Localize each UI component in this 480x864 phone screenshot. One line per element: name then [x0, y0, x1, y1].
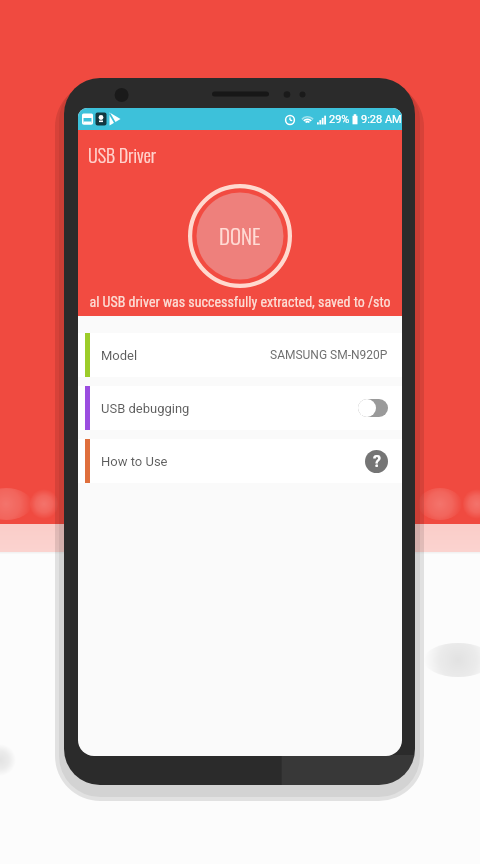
staticText: Model: [101, 348, 138, 363]
button[interactable]: Model: [78, 333, 402, 377]
staticText: USB Driver: [88, 142, 157, 169]
button[interactable]: DONE: [187, 183, 293, 289]
staticText: ?: [373, 452, 381, 471]
button[interactable]: USB debugging: [78, 386, 402, 430]
staticText: USB debugging: [101, 401, 190, 416]
button[interactable]: How to Use: [78, 439, 402, 483]
button[interactable]: Toggle USB debugging: [358, 399, 388, 417]
staticText: al USB driver was successfully extracted…: [89, 294, 391, 310]
staticText: How to Use: [101, 454, 168, 469]
staticText: SAMSUNG SM-N920P: [270, 348, 388, 362]
staticText: 9:28 AM: [361, 113, 402, 126]
staticText: DONE: [219, 220, 261, 251]
staticText: 29%: [329, 113, 350, 126]
button[interactable]: How to use help: [365, 450, 388, 473]
